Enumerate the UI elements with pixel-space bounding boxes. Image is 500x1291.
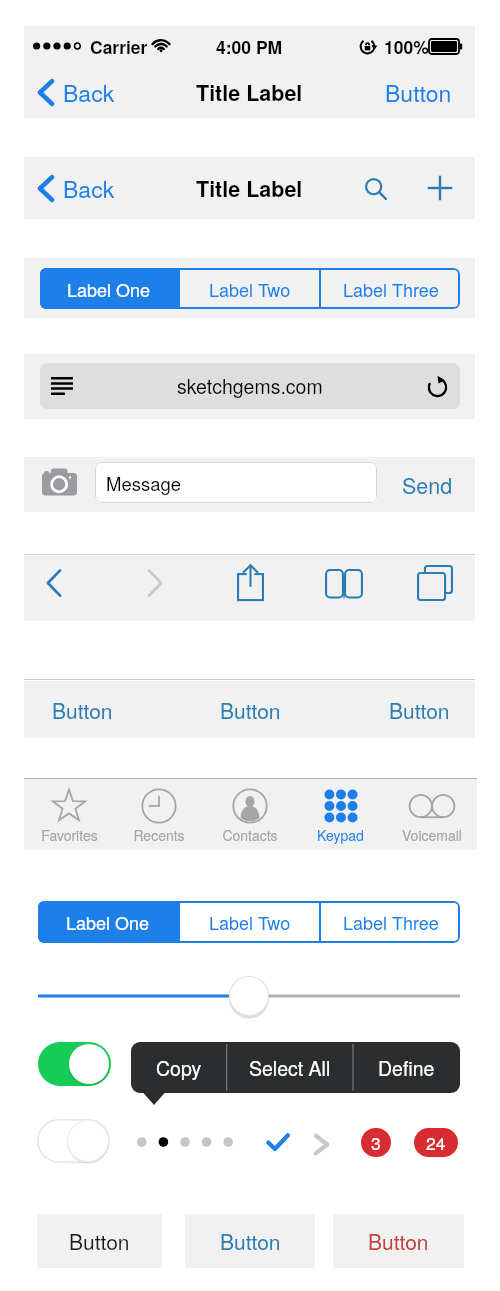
- staticText: Label One: [66, 909, 150, 935]
- staticText: Select All: [249, 1054, 331, 1082]
- button[interactable]: Button: [371, 68, 466, 117]
- button[interactable]: Switch off: [37, 1119, 110, 1163]
- button[interactable]: Button: [204, 688, 296, 732]
- button[interactable]: Back: [38, 563, 70, 603]
- staticText: Label Two: [209, 909, 291, 935]
- button[interactable]: Label One: [38, 901, 178, 943]
- staticText: Voicemail: [402, 825, 462, 845]
- button[interactable]: Keypad: [295, 779, 386, 850]
- button[interactable]: Camera: [42, 468, 77, 497]
- button[interactable]: Button: [373, 688, 465, 732]
- staticText: Button: [220, 695, 281, 725]
- button[interactable]: Label Three: [321, 901, 460, 943]
- button[interactable]: Switch on: [38, 1042, 111, 1086]
- button[interactable]: Button: [37, 1214, 162, 1268]
- staticText: Button: [52, 695, 113, 725]
- staticText: Contacts: [222, 825, 278, 845]
- staticText: Button: [385, 76, 452, 109]
- button[interactable]: Send: [398, 465, 457, 504]
- button[interactable]: Label Three: [321, 268, 460, 309]
- button[interactable]: Copy: [131, 1042, 227, 1093]
- button[interactable]: Label Two: [180, 901, 319, 943]
- staticText: Message: [106, 470, 182, 496]
- staticText: Label Two: [209, 276, 291, 302]
- staticText: Button: [368, 1226, 429, 1256]
- button[interactable]: Favorites: [24, 779, 114, 850]
- button[interactable]: Share: [232, 561, 268, 605]
- button[interactable]: Back: [28, 68, 125, 117]
- staticText: 100%: [384, 34, 429, 59]
- staticText: Copy: [156, 1054, 202, 1082]
- staticText: Button: [389, 695, 450, 725]
- button[interactable]: Reader view: [44, 366, 80, 406]
- staticText: Back: [63, 172, 115, 205]
- button[interactable]: Checked: [267, 1133, 289, 1152]
- button[interactable]: Voicemail: [386, 779, 477, 850]
- button[interactable]: Contacts: [204, 779, 295, 850]
- button[interactable]: Forward: [139, 563, 171, 603]
- staticText: Recents: [133, 825, 185, 845]
- button[interactable]: Add: [420, 168, 460, 208]
- button[interactable]: Reload: [420, 366, 456, 406]
- staticText: Back: [63, 76, 115, 109]
- button[interactable]: Define: [353, 1042, 460, 1093]
- staticText: Button: [69, 1226, 130, 1256]
- button[interactable]: Label One: [40, 268, 178, 309]
- staticText: Keypad: [317, 825, 364, 845]
- button[interactable]: 24: [414, 1128, 458, 1157]
- button[interactable]: Button: [36, 688, 128, 732]
- button[interactable]: 3: [361, 1128, 391, 1157]
- button[interactable]: Button: [333, 1214, 464, 1268]
- button[interactable]: Back: [28, 164, 125, 213]
- button[interactable]: Bookmarks: [324, 565, 364, 605]
- button[interactable]: Select All: [227, 1042, 353, 1093]
- staticText: Label Three: [343, 909, 439, 935]
- staticText: Title Label: [196, 173, 303, 204]
- staticText: Title Label: [196, 77, 303, 108]
- staticText: 3: [371, 1130, 381, 1155]
- staticText: Define: [378, 1054, 435, 1082]
- staticText: Button: [220, 1226, 281, 1256]
- button[interactable]: Recents: [114, 779, 204, 850]
- staticText: Send: [402, 469, 453, 500]
- button[interactable]: Search: [357, 168, 393, 208]
- staticText: 24: [426, 1130, 446, 1155]
- button[interactable]: Button: [185, 1214, 315, 1268]
- button[interactable]: Tabs: [417, 561, 453, 605]
- staticText: Carrier: [90, 34, 148, 59]
- button[interactable]: More: [314, 1134, 329, 1155]
- staticText: 4:00 PM: [216, 34, 283, 59]
- staticText: Favorites: [41, 825, 98, 845]
- staticText: Label One: [67, 276, 151, 302]
- staticText: Label Three: [343, 276, 439, 302]
- button[interactable]: Message: [95, 462, 377, 503]
- staticText: sketchgems.com: [177, 372, 323, 400]
- button[interactable]: Label Two: [180, 268, 319, 309]
